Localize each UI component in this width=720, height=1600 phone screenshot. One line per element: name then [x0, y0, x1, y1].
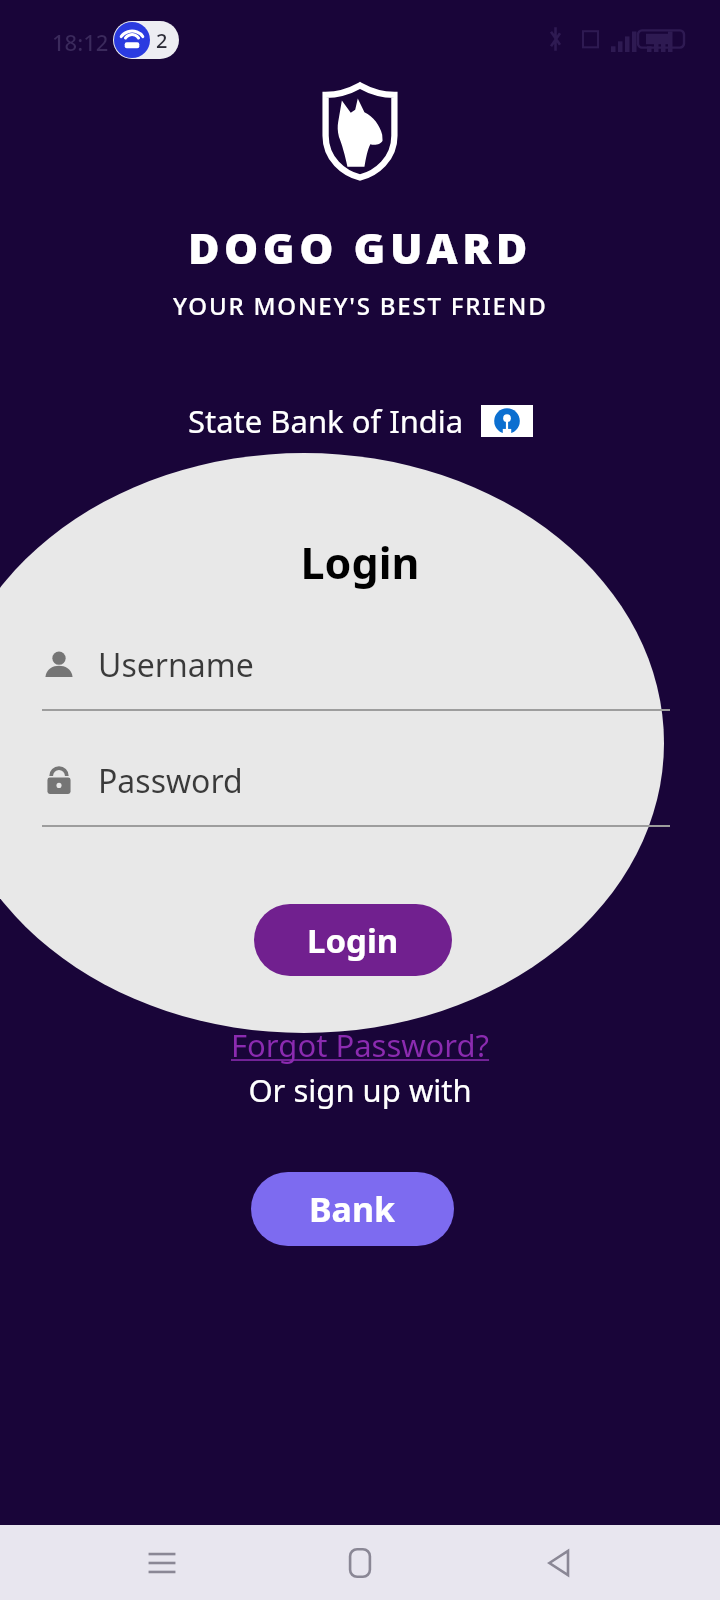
button[interactable]: Password: [42, 759, 670, 827]
button[interactable]: Back: [522, 1526, 596, 1600]
button[interactable]: Forgot Password?: [221, 1022, 500, 1068]
button[interactable]: Login: [254, 904, 452, 976]
button[interactable]: Bank: [251, 1172, 454, 1246]
staticText: Bank: [309, 1186, 396, 1232]
other: State Bank of India logo: [481, 405, 533, 437]
button[interactable]: Username: [42, 643, 670, 711]
other: Dogo Guard logo: [323, 84, 397, 178]
staticText: State Bank of India: [188, 400, 464, 442]
staticText: DOGO GUARD: [188, 218, 532, 277]
staticText: Username: [98, 643, 254, 687]
staticText: YOUR MONEY'S BEST FRIEND: [173, 289, 548, 322]
staticText: 2: [156, 27, 168, 54]
staticText: Login: [0, 533, 720, 592]
staticText: Forgot Password?: [231, 1024, 490, 1066]
staticText: Password: [98, 759, 243, 803]
staticText: 18:12: [52, 27, 109, 57]
button[interactable]: Home: [323, 1526, 397, 1600]
button[interactable]: Recent apps: [125, 1526, 199, 1600]
button[interactable]: State Bank of India: [0, 400, 720, 442]
staticText: Login: [307, 918, 399, 963]
staticText: Or sign up with: [0, 1069, 720, 1111]
